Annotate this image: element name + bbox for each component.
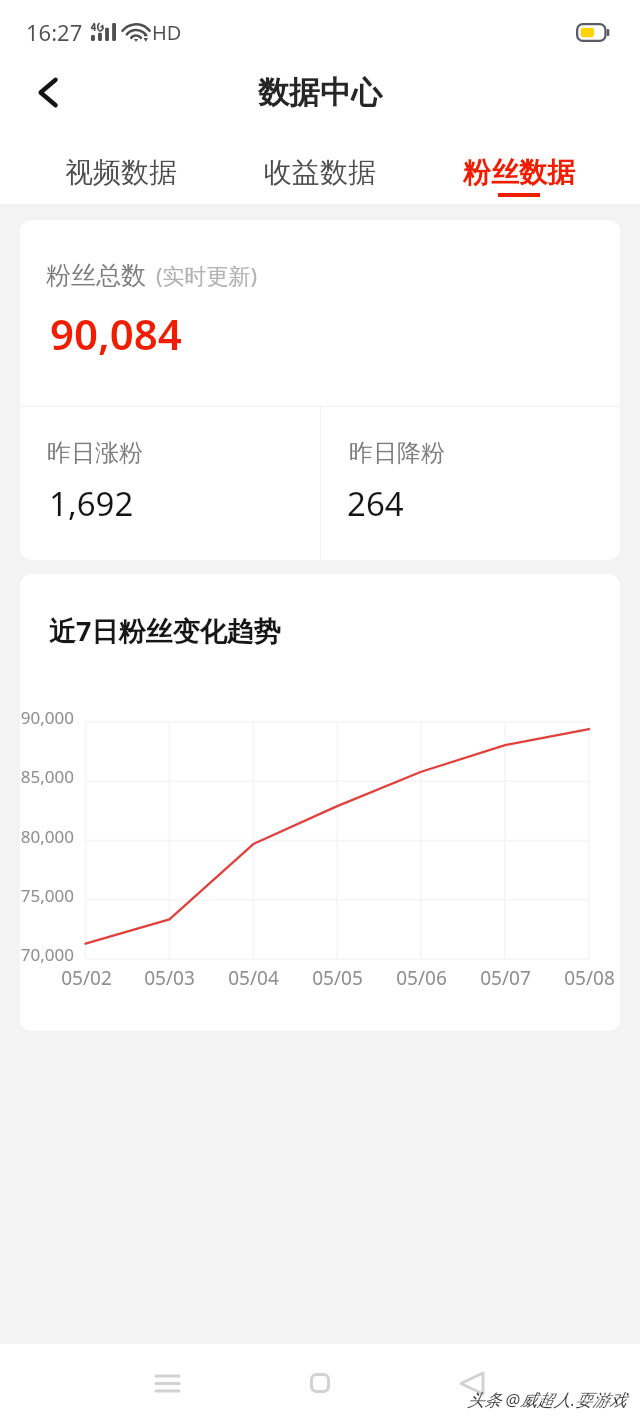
button[interactable]: Back xyxy=(18,62,78,122)
staticText: 85,000 xyxy=(20,765,74,788)
staticText: 90,084 xyxy=(50,305,182,362)
staticText: 1,692 xyxy=(49,481,134,526)
staticText: 05/05 xyxy=(312,965,363,991)
staticText: 近7日粉丝变化趋势 xyxy=(49,612,281,649)
staticText: (实时更新) xyxy=(156,260,258,290)
staticText: 05/02 xyxy=(61,965,112,991)
staticText: 粉丝总数 xyxy=(46,260,146,291)
staticText: 264 xyxy=(347,481,404,526)
staticText: 70,000 xyxy=(20,943,74,966)
staticText: 头条 @威超人.耍游戏 xyxy=(467,1388,627,1411)
staticText: 05/04 xyxy=(228,965,279,991)
staticText: 昨日涨粉 xyxy=(47,438,143,468)
staticText: 昨日降粉 xyxy=(349,438,445,468)
staticText: 05/06 xyxy=(396,965,447,991)
staticText: 数据中心 xyxy=(258,73,382,112)
staticText: 05/07 xyxy=(480,965,531,991)
staticText: 视频数据 xyxy=(65,155,177,190)
staticText: 05/08 xyxy=(564,965,615,991)
staticText: 粉丝数据 xyxy=(463,155,575,190)
button[interactable]: 视频数据 xyxy=(22,0,220,204)
staticText: 90,000 xyxy=(20,706,74,729)
button[interactable]: Back xyxy=(442,1353,502,1413)
staticText: HD xyxy=(152,19,182,46)
button[interactable]: 粉丝数据 xyxy=(419,0,618,204)
button[interactable]: 收益数据 xyxy=(220,0,419,204)
staticText: 75,000 xyxy=(20,884,74,907)
button[interactable]: Recent apps xyxy=(137,1353,197,1413)
staticText: 80,000 xyxy=(20,825,74,848)
staticText: 收益数据 xyxy=(264,155,376,190)
staticText: 16:27 xyxy=(26,17,83,47)
staticText: 05/03 xyxy=(144,965,195,991)
button[interactable]: Home xyxy=(290,1353,350,1413)
